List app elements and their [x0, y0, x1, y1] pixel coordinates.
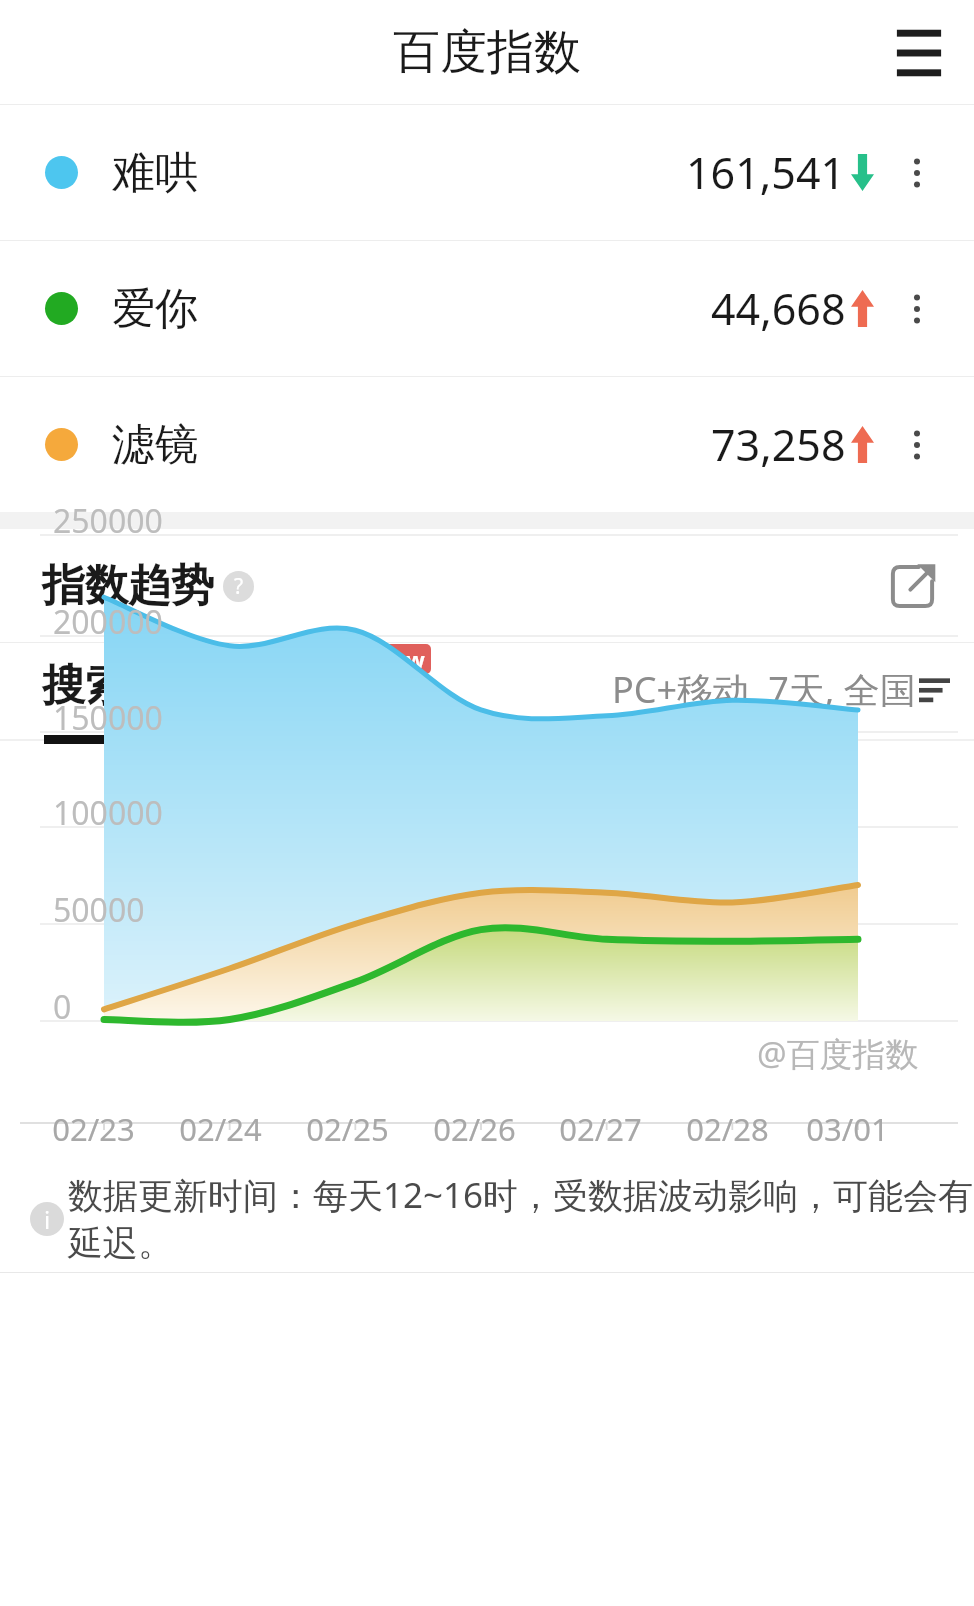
staticText: 200000 [53, 600, 163, 644]
staticText: 数据更新时间：每天12~16时，受数据波动影响，可能会有延迟。 [68, 1171, 974, 1266]
button[interactable]: 滤镜 [0, 377, 974, 512]
staticText: 02/28 [686, 1108, 769, 1150]
staticText: 0 [53, 985, 72, 1029]
staticText: i [44, 1203, 51, 1236]
staticText: 难哄 [112, 146, 198, 200]
button[interactable]: Menu [886, 20, 952, 86]
staticText: 02/23 [52, 1108, 135, 1150]
button[interactable]: 难哄 [0, 105, 974, 240]
staticText: PC+移动, 7天, 全国 [612, 665, 916, 714]
staticText: 02/26 [433, 1108, 516, 1150]
button[interactable]: PC+移动, 7天, 全国 [612, 665, 950, 714]
staticText: 02/25 [306, 1108, 389, 1150]
staticText: 150000 [53, 696, 163, 740]
staticText: 02/24 [179, 1108, 262, 1150]
staticText: 44,668 [711, 279, 846, 338]
staticText: 50000 [53, 888, 145, 932]
button[interactable]: Open full chart [880, 554, 944, 618]
staticText: 搜索指数 [42, 659, 214, 713]
staticText: 百度指数 [393, 23, 581, 82]
staticText: 资讯指数 [212, 659, 384, 713]
button[interactable]: More options [888, 144, 946, 202]
staticText: 02/27 [559, 1108, 642, 1150]
button[interactable]: Help [223, 571, 254, 602]
button[interactable]: 资讯指数 [212, 659, 384, 713]
staticText: ? [234, 572, 244, 601]
button[interactable]: More options [888, 280, 946, 338]
button[interactable]: 搜索指数 [42, 659, 214, 713]
staticText: new [379, 644, 425, 674]
button[interactable]: 爱你 [0, 241, 974, 376]
staticText: 73,258 [711, 415, 846, 474]
staticText: @百度指数 [757, 1031, 919, 1076]
staticText: 滤镜 [112, 418, 198, 472]
staticText: 250000 [53, 499, 163, 543]
button[interactable]: More options [888, 416, 946, 474]
staticText: 100000 [53, 791, 163, 835]
staticText: 爱你 [112, 282, 198, 336]
staticText: 03/01 [806, 1108, 889, 1150]
staticText: 161,541 [686, 143, 846, 202]
staticText: 指数趋势 [42, 559, 214, 613]
